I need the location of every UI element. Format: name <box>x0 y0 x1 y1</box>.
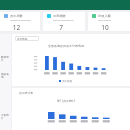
button[interactable]: 总收入额 <box>88 12 130 31</box>
staticText: Total revenue <box>98 19 111 22</box>
staticText: 员工数量 <box>62 79 73 82</box>
staticText: Monthly performance <box>53 19 74 22</box>
button[interactable]: 月度绩效 <box>43 12 85 31</box>
button[interactable]: 员工总数 <box>0 12 40 31</box>
staticText: 7 <box>43 23 79 31</box>
staticText: 本月数据 <box>17 37 28 40</box>
staticText: 总收入额 <box>98 14 111 18</box>
button[interactable]: 绩效表现 <box>1 72 11 78</box>
staticText: 10 <box>88 23 122 31</box>
button[interactable]: 工资统计 <box>1 113 11 119</box>
staticText: 月度绩效 <box>53 14 66 18</box>
button[interactable]: 数据统计 <box>1 55 11 61</box>
staticText: 部门员工统计 <box>12 99 120 103</box>
staticText: Number of employees <box>10 19 31 22</box>
staticText: 员工总数 <box>10 14 23 18</box>
staticText: 员工统计表 <box>19 91 33 95</box>
staticText: 12 <box>0 23 33 31</box>
staticText: 全国各地区的员工分布情况 <box>12 44 120 48</box>
button[interactable]: 本月数据 <box>15 36 39 41</box>
